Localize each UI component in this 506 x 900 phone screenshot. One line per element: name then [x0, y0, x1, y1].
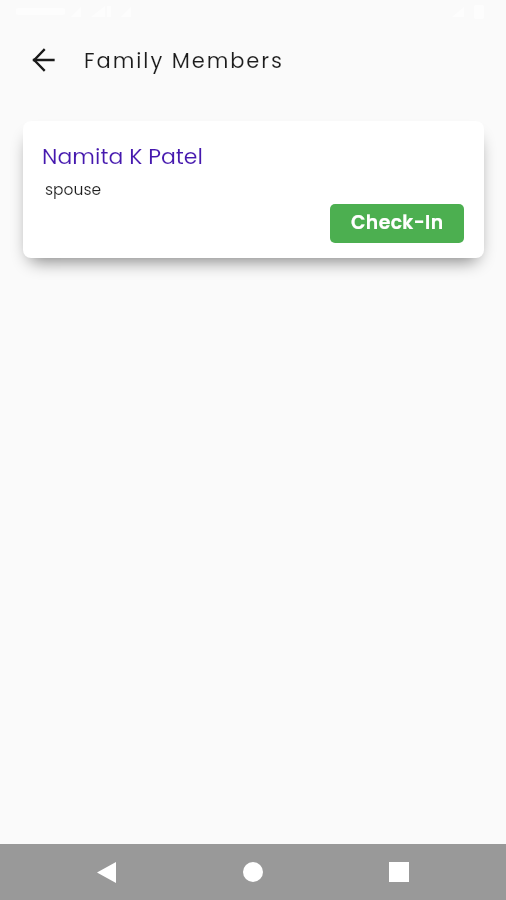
button[interactable]: Namita K Patel	[23, 121, 484, 258]
staticText: Family Members	[84, 46, 284, 75]
button[interactable]: Home	[229, 848, 277, 896]
staticText: Namita K Patel	[42, 141, 203, 172]
staticText: spouse	[45, 179, 102, 201]
staticText: Check-In	[351, 209, 444, 235]
button[interactable]: Back	[82, 848, 130, 896]
button[interactable]: Check-In	[330, 204, 464, 243]
button[interactable]: Recent apps	[375, 848, 423, 896]
button[interactable]: Back	[21, 38, 65, 82]
